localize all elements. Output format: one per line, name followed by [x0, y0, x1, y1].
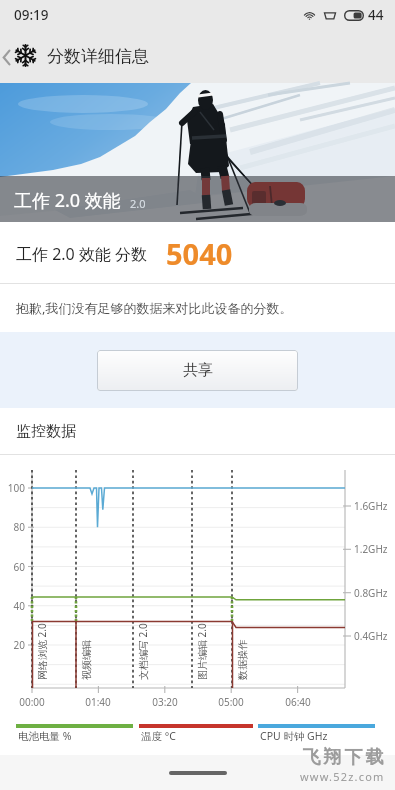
staticText: 44: [368, 6, 384, 24]
staticText: 09:19: [14, 6, 49, 24]
staticText: 05:00: [212, 695, 250, 709]
staticText: 抱歉,我们没有足够的数据来对比此设备的分数。: [16, 299, 293, 317]
staticText: 分数详细信息: [47, 46, 149, 67]
staticText: 2.0: [130, 196, 146, 211]
staticText: 工作 2.0 效能 分数: [16, 243, 148, 265]
staticText: 100: [3, 481, 25, 495]
staticText: 00:00: [13, 695, 51, 709]
staticText: 飞翔下载: [301, 746, 385, 769]
staticText: 网络浏览 2.0: [35, 623, 49, 680]
staticText: 0.8GHz: [354, 586, 388, 600]
staticText: 监控数据: [16, 422, 76, 441]
staticText: 40: [3, 599, 25, 613]
staticText: 5040: [166, 234, 233, 273]
staticText: 共享: [183, 361, 213, 380]
staticText: 工作 2.0 效能: [14, 188, 121, 213]
staticText: 03:20: [146, 695, 184, 709]
staticText: 0.4GHz: [354, 629, 388, 643]
staticText: 20: [3, 638, 25, 652]
staticText: 06:40: [279, 695, 317, 709]
staticText: 1.6GHz: [354, 499, 388, 513]
staticText: 文档编写 2.0: [136, 623, 150, 680]
staticText: 数据操作: [236, 640, 249, 680]
staticText: CPU 时钟 GHz: [260, 729, 328, 743]
staticText: 电池电量 %: [18, 729, 72, 743]
staticText: 01:40: [79, 695, 117, 709]
staticText: 图片编辑 2.0: [195, 623, 209, 680]
staticText: 80: [3, 520, 25, 534]
button[interactable]: Home: [169, 771, 227, 775]
staticText: www.52z.com: [300, 769, 385, 784]
staticText: 温度 °C: [141, 729, 176, 743]
button[interactable]: Back: [0, 33, 13, 81]
staticText: 60: [3, 560, 25, 574]
staticText: 1.2GHz: [354, 542, 388, 556]
staticText: 视频编辑: [80, 640, 93, 680]
button[interactable]: 共享: [97, 350, 298, 391]
